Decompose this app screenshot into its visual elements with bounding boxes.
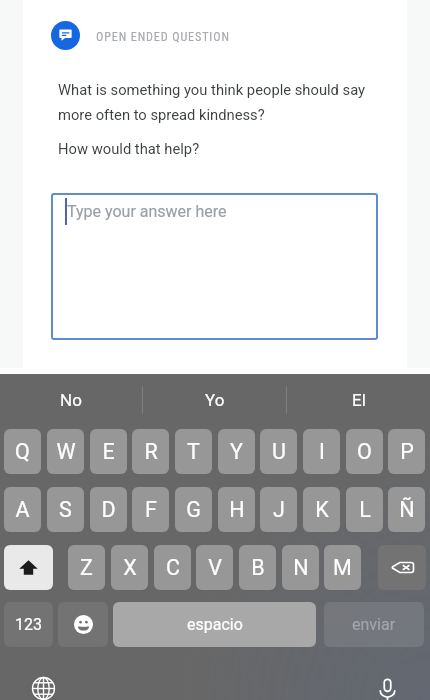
button[interactable]: Y [218, 429, 255, 474]
button[interactable]: M [324, 545, 361, 590]
button[interactable]: U [260, 429, 297, 474]
staticText: El [352, 390, 366, 410]
staticText: Y [230, 439, 243, 464]
button[interactable]: V [196, 545, 233, 590]
button[interactable]: B [239, 545, 276, 590]
staticText: C [166, 555, 180, 580]
button[interactable]: C [154, 545, 191, 590]
button[interactable]: 123 [4, 602, 53, 647]
staticText: M [333, 555, 352, 580]
staticText: What is something you think people shoul… [58, 81, 376, 123]
button[interactable]: I [303, 429, 340, 474]
staticText: Yo [205, 390, 225, 410]
staticText: A [15, 497, 30, 522]
staticText: R [144, 439, 158, 464]
button[interactable]: P [388, 429, 425, 474]
button[interactable]: Type your answer here [51, 193, 378, 340]
staticText: T [187, 439, 200, 464]
button[interactable]: Q [4, 429, 41, 474]
staticText: P [400, 439, 414, 464]
staticText: B [251, 555, 265, 580]
button[interactable]: Shift [4, 545, 53, 590]
staticText: H [229, 497, 245, 522]
staticText: K [315, 497, 329, 522]
staticText: 123 [15, 615, 42, 634]
staticText: enviar [352, 615, 396, 634]
staticText: OPEN ENDED QUESTION [96, 30, 230, 44]
button[interactable]: W [47, 429, 84, 474]
button[interactable]: Ñ [388, 487, 425, 532]
button[interactable]: No [0, 374, 142, 426]
staticText: D [101, 497, 116, 522]
button[interactable]: N [282, 545, 319, 590]
staticText: X [123, 555, 137, 580]
staticText: Z [80, 555, 93, 580]
button[interactable]: espacio [113, 602, 316, 647]
button[interactable]: L [346, 487, 383, 532]
staticText: U [272, 439, 286, 464]
staticText: No [60, 390, 82, 410]
button[interactable]: R [132, 429, 169, 474]
staticText: G [186, 497, 201, 522]
button[interactable]: Yo [143, 374, 286, 426]
button[interactable]: X [111, 545, 148, 590]
button[interactable]: T [175, 429, 212, 474]
staticText: J [273, 497, 285, 522]
staticText: espacio [187, 615, 243, 634]
staticText: O [357, 439, 372, 464]
button[interactable]: D [90, 487, 127, 532]
button[interactable]: Backspace [378, 545, 426, 590]
button[interactable]: H [218, 487, 255, 532]
staticText: S [59, 497, 72, 522]
button[interactable]: Open ended question [51, 21, 80, 50]
staticText: F [145, 497, 157, 522]
button[interactable]: E [90, 429, 127, 474]
button[interactable]: K [303, 487, 340, 532]
button[interactable]: Change language [28, 673, 58, 700]
button[interactable]: G [175, 487, 212, 532]
staticText: V [208, 555, 222, 580]
staticText: N [293, 555, 309, 580]
button[interactable]: Z [68, 545, 105, 590]
staticText: L [359, 497, 371, 522]
staticText: W [56, 439, 76, 464]
button[interactable]: enviar [324, 602, 424, 647]
button[interactable]: Voice input [372, 673, 402, 700]
staticText: How would that help? [58, 140, 200, 157]
button[interactable]: Emoji [58, 602, 108, 647]
button[interactable]: S [47, 487, 84, 532]
staticText: Ñ [399, 497, 415, 522]
staticText: I [319, 439, 325, 464]
button[interactable]: O [346, 429, 383, 474]
button[interactable]: F [132, 487, 169, 532]
button[interactable]: El [287, 374, 430, 426]
staticText: Type your answer here [67, 202, 227, 221]
staticText: E [102, 439, 115, 464]
staticText: Q [15, 439, 30, 464]
button[interactable]: J [260, 487, 297, 532]
button[interactable]: A [4, 487, 41, 532]
